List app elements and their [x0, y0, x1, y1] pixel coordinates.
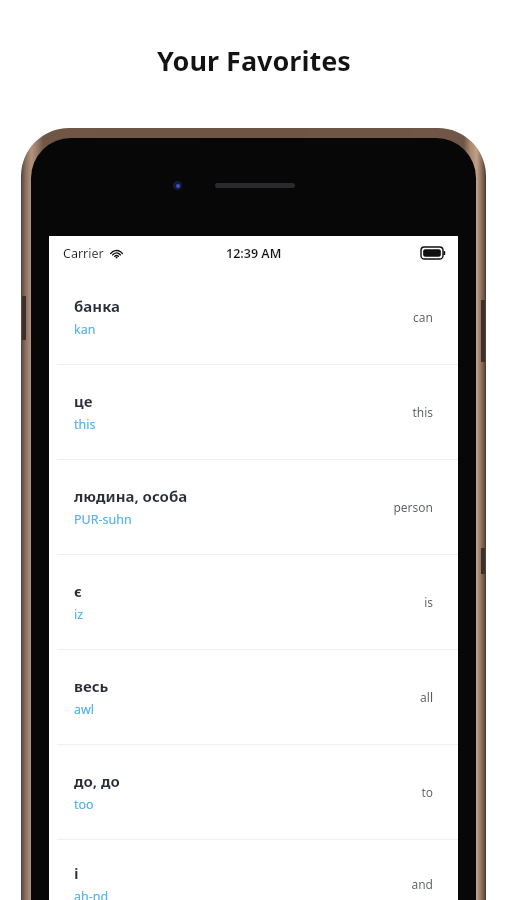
- staticText: PUR-suhn: [74, 511, 132, 528]
- staticText: awl: [74, 701, 95, 718]
- button[interactable]: людина, особа: [49, 460, 458, 554]
- staticText: і: [74, 863, 79, 883]
- staticText: all: [420, 689, 433, 705]
- staticText: and: [411, 876, 433, 892]
- staticText: це: [74, 391, 93, 411]
- staticText: є: [74, 581, 82, 601]
- staticText: весь: [74, 676, 109, 696]
- staticText: Carrier: [63, 245, 104, 262]
- staticText: too: [74, 796, 94, 813]
- staticText: ah-nd: [74, 888, 109, 900]
- staticText: is: [424, 594, 433, 610]
- button[interactable]: до, до: [49, 745, 458, 839]
- staticText: person: [393, 499, 433, 515]
- staticText: 12:39 AM: [226, 245, 282, 262]
- staticText: to: [421, 784, 433, 800]
- button[interactable]: банка: [49, 270, 458, 364]
- button[interactable]: це: [49, 365, 458, 459]
- button[interactable]: весь: [49, 650, 458, 744]
- staticText: Your Favorites: [157, 42, 351, 79]
- staticText: людина, особа: [74, 486, 188, 506]
- staticText: this: [74, 416, 96, 433]
- button[interactable]: і: [49, 840, 458, 900]
- staticText: до, до: [74, 771, 120, 791]
- staticText: this: [412, 404, 433, 420]
- button[interactable]: є: [49, 555, 458, 649]
- staticText: kan: [74, 321, 96, 338]
- staticText: iz: [74, 606, 84, 623]
- staticText: банка: [74, 296, 121, 316]
- staticText: can: [413, 309, 433, 325]
